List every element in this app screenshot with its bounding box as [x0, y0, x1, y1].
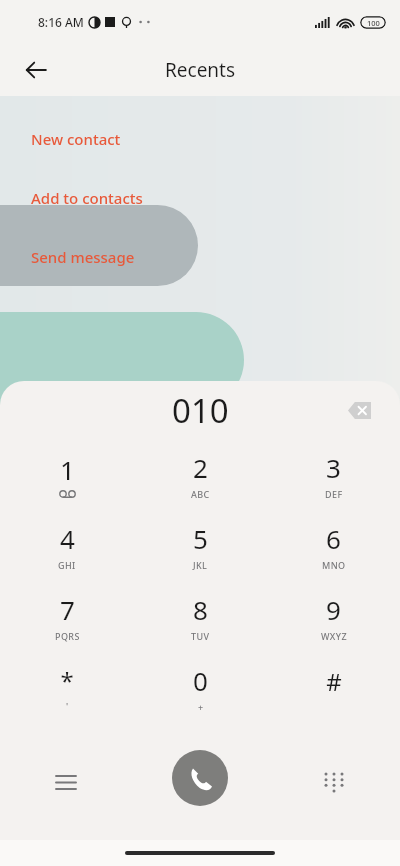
button[interactable]: 1	[0, 439, 134, 510]
button[interactable]: 9	[267, 581, 400, 652]
staticText: Recents	[165, 57, 236, 83]
staticText: 8	[193, 592, 208, 627]
button[interactable]: Send message	[0, 240, 400, 274]
button[interactable]: Add to contacts	[0, 181, 400, 215]
staticText: MNO	[322, 559, 346, 571]
button[interactable]: 2	[134, 439, 267, 510]
staticText: New contact	[31, 129, 121, 149]
staticText: 0	[193, 663, 208, 698]
staticText: JKL	[193, 559, 208, 571]
button[interactable]	[0, 312, 244, 408]
button[interactable]: Dialpad	[312, 760, 356, 804]
staticText: Send message	[31, 247, 135, 267]
staticText: +	[198, 701, 204, 713]
button[interactable]: 4	[0, 510, 134, 581]
button[interactable]: Backspace	[339, 390, 379, 430]
staticText: 9	[326, 592, 341, 627]
button[interactable]: 8	[134, 581, 267, 652]
button[interactable]: 6	[267, 510, 400, 581]
staticText: 100	[367, 18, 380, 28]
staticText: PQRS	[55, 630, 80, 642]
button[interactable]: 3	[267, 439, 400, 510]
staticText: GHI	[58, 559, 76, 571]
staticText: 5	[193, 521, 208, 556]
button[interactable]: 7	[0, 581, 134, 652]
button[interactable]: #	[267, 652, 400, 723]
staticText: DEF	[325, 488, 343, 500]
staticText: Add to contacts	[31, 188, 143, 208]
staticText: ABC	[191, 488, 210, 500]
button[interactable]	[0, 205, 198, 286]
button[interactable]: New contact	[0, 122, 400, 156]
staticText: 2	[193, 450, 208, 485]
staticText: 1	[60, 452, 75, 487]
staticText: TUV	[191, 630, 210, 642]
staticText: 010	[172, 388, 229, 433]
button[interactable]: Menu	[44, 760, 88, 804]
button[interactable]: Back	[14, 48, 58, 92]
staticText: *	[60, 664, 74, 697]
button[interactable]: Call	[172, 750, 228, 806]
staticText: 3	[326, 450, 341, 485]
staticText: '	[66, 700, 69, 712]
staticText: WXYZ	[321, 630, 347, 642]
staticText: #	[326, 665, 342, 698]
button[interactable]: 5	[134, 510, 267, 581]
button[interactable]: *	[0, 652, 134, 723]
staticText: 8:16 AM	[38, 14, 84, 30]
staticText: 4	[60, 521, 75, 556]
button[interactable]: 0	[134, 652, 267, 723]
staticText: 7	[60, 592, 75, 627]
staticText: 6	[326, 521, 341, 556]
